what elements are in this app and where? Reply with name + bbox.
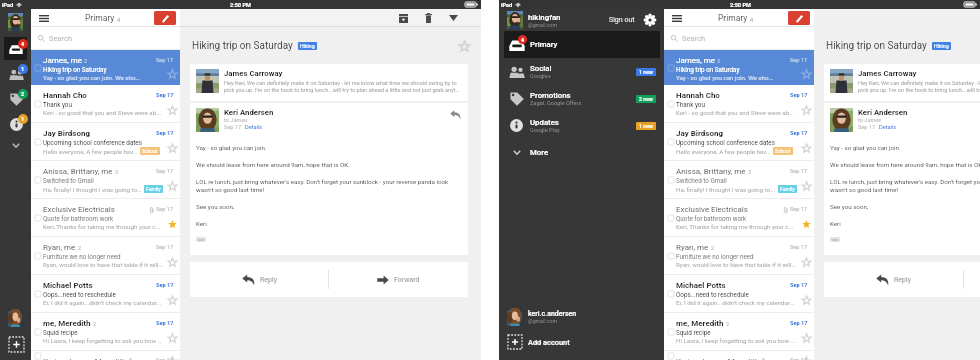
button[interactable]: Star	[664, 237, 814, 274]
button[interactable]: Star	[31, 275, 180, 312]
staticText: Hello everyone, A few people hav...	[676, 148, 771, 155]
button[interactable]: Other account	[8, 309, 23, 327]
staticText: Squid recipe	[43, 329, 174, 336]
button[interactable]: Compose	[788, 11, 810, 25]
staticText: Sep 17	[156, 168, 174, 175]
button[interactable]: Star	[664, 351, 814, 360]
staticText: Keri	[196, 220, 207, 227]
button[interactable]: Forward	[329, 262, 468, 297]
button[interactable]: Reply	[190, 262, 328, 297]
button[interactable]: Star	[166, 332, 178, 344]
staticText: Reply	[260, 276, 277, 284]
button[interactable]: Star	[664, 313, 814, 350]
button[interactable]: Archive	[396, 11, 410, 25]
button[interactable]: Star	[31, 237, 180, 274]
staticText: Thank you	[43, 101, 174, 108]
staticText: 4	[117, 17, 121, 23]
button[interactable]: Delete	[421, 11, 435, 25]
button[interactable]: Inbox category	[4, 112, 27, 135]
staticText: Details	[245, 124, 263, 131]
button[interactable]: Star	[166, 180, 178, 192]
staticText: Sep 17	[156, 282, 174, 289]
staticText: Er, I did it again...didn't check my cal…	[43, 299, 162, 306]
button[interactable]: Star	[166, 357, 178, 360]
staticText: Hello everyone, A few people hav...	[43, 148, 138, 155]
button[interactable]: Account	[8, 13, 23, 31]
button[interactable]: Star	[800, 142, 812, 154]
button[interactable]: Reply	[449, 108, 462, 121]
button[interactable]: Updates	[504, 112, 660, 139]
button[interactable]: Star	[800, 180, 812, 192]
button[interactable]: Star	[800, 218, 812, 230]
staticText: 1 new	[639, 123, 653, 129]
button[interactable]: Inbox category	[4, 37, 27, 60]
button[interactable]: More options	[446, 11, 460, 25]
button[interactable]: Search	[664, 27, 814, 50]
button[interactable]: Star	[800, 256, 812, 268]
button[interactable]: Star	[31, 50, 180, 85]
staticText: Sep 17	[858, 124, 876, 131]
button[interactable]: Inbox category	[4, 62, 27, 85]
button[interactable]: More	[499, 139, 665, 165]
button[interactable]: Compose	[154, 11, 176, 25]
button[interactable]: Star	[31, 199, 180, 236]
button[interactable]: Settings	[643, 13, 657, 27]
button[interactable]: Star	[664, 275, 814, 312]
staticText: Sep 17	[790, 357, 808, 360]
staticText: LOL re lunch, just bring whatever's easy…	[196, 178, 449, 185]
button[interactable]: Star	[664, 161, 814, 198]
button[interactable]: Star	[166, 218, 178, 230]
staticText: 2	[21, 91, 25, 97]
staticText: James Carroway	[858, 69, 917, 78]
button[interactable]: Menu	[669, 11, 685, 25]
button[interactable]: Promotions	[504, 85, 660, 112]
button[interactable]: Star	[166, 294, 178, 306]
button[interactable]: Star	[31, 313, 180, 350]
button[interactable]: Star	[166, 104, 178, 116]
button[interactable]: Star	[31, 351, 180, 360]
button[interactable]: Sign out	[607, 13, 637, 27]
button[interactable]: Show trimmed content	[196, 237, 206, 242]
staticText: Furniture we no longer need	[43, 253, 174, 260]
staticText: Details	[879, 124, 897, 131]
staticText: Sep 17	[156, 206, 174, 213]
button[interactable]: Star	[457, 39, 471, 53]
button[interactable]: Star	[800, 332, 812, 344]
button[interactable]: Star	[166, 142, 178, 154]
button[interactable]: Star	[31, 123, 180, 160]
button[interactable]: Inbox category	[4, 87, 27, 110]
button[interactable]: Star	[664, 123, 814, 160]
staticText: Search	[49, 34, 73, 43]
button[interactable]: Star	[664, 85, 814, 122]
button[interactable]: Star	[166, 68, 178, 80]
button[interactable]: Add account	[499, 330, 665, 354]
button[interactable]: Menu	[36, 11, 52, 25]
button[interactable]: keri.c.andersen	[499, 304, 665, 330]
staticText: Ryan, me	[43, 243, 76, 252]
staticText: Sep 17	[790, 130, 808, 137]
button[interactable]: Star	[31, 161, 180, 198]
button[interactable]: Star	[800, 104, 812, 116]
button[interactable]: Search	[31, 27, 180, 50]
button[interactable]: Show trimmed content	[830, 237, 840, 242]
staticText: Family	[780, 186, 795, 192]
button[interactable]: Star	[664, 199, 814, 236]
staticText: Yay - so glad you can join.	[830, 144, 901, 151]
button[interactable]: Star	[31, 85, 180, 122]
button[interactable]: 4	[504, 31, 660, 58]
button[interactable]: Social	[504, 58, 660, 85]
staticText: Yay - so glad you can join.	[196, 144, 267, 151]
button[interactable]: Star	[800, 294, 812, 306]
staticText: Quote for bathroom work	[43, 215, 174, 222]
button[interactable]: Star	[166, 256, 178, 268]
staticText: Switched to Gmail	[676, 177, 808, 184]
staticText: See you soon,	[830, 203, 869, 210]
button[interactable]: Reply	[824, 262, 963, 297]
button[interactable]: Add account	[6, 334, 26, 354]
button[interactable]: More	[3, 138, 29, 153]
button[interactable]: Star	[800, 357, 812, 360]
staticText: See you soon,	[196, 203, 235, 210]
button[interactable]: Star	[800, 68, 812, 80]
button[interactable]: Star	[664, 50, 814, 85]
